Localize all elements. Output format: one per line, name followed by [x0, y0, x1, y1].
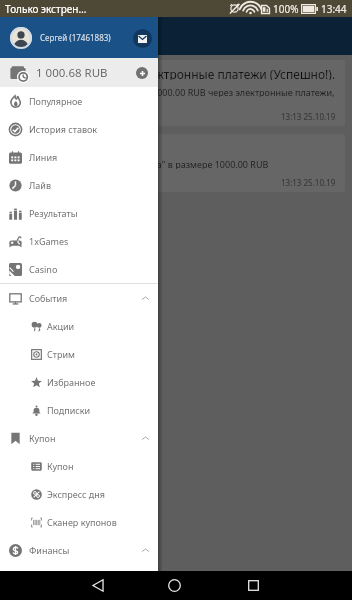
button[interactable]: 1 000.68 RUB [0, 58, 158, 87]
staticText: История: Пополнение счета через электрон… [7, 66, 336, 80]
staticText: Финансы [29, 544, 70, 556]
button[interactable]: Линия [0, 143, 158, 171]
staticText: Пополнение счета в размере 1000.00 RUB ч… [22, 86, 335, 97]
button[interactable]: Сканер купонов [0, 508, 158, 536]
button[interactable]: Экспресс дня [0, 480, 158, 508]
button[interactable]: Финансы [0, 536, 158, 564]
staticText: 1xGames [29, 235, 69, 247]
button[interactable]: Купон [0, 424, 158, 452]
staticText: События [29, 292, 68, 304]
button[interactable]: Back [83, 571, 112, 600]
staticText: Только экстрен… [5, 2, 87, 16]
button[interactable]: Начисление бонуса "Счастливая пятница" в… [7, 134, 345, 192]
button[interactable]: Casino [0, 255, 158, 283]
staticText: Избранное [47, 376, 96, 388]
staticText: Стрим [47, 348, 75, 360]
button[interactable]: История: Пополнение счета через электрон… [7, 60, 345, 126]
staticText: Сканер купонов [47, 516, 117, 528]
button[interactable]: Recents [239, 571, 268, 600]
button[interactable]: Избранное [0, 368, 158, 396]
button[interactable]: Подписки [0, 396, 158, 424]
button[interactable]: История ставок [0, 115, 158, 143]
staticText: Сергей (17461883) [40, 32, 111, 43]
staticText: 13:13 25.10.19 [281, 177, 336, 188]
button[interactable] [0, 0, 352, 600]
staticText: Акции [47, 320, 75, 332]
staticText: 13:44 [321, 2, 347, 16]
staticText: Линия [29, 151, 58, 163]
staticText: Экспресс дня [47, 488, 106, 500]
button[interactable]: Акции [0, 312, 158, 340]
staticText: Популярное [29, 95, 83, 107]
staticText: Результаты [29, 207, 78, 219]
button[interactable]: Сергей (17461883) [0, 17, 158, 58]
button[interactable]: Результаты [0, 199, 158, 227]
staticText: Лайв [29, 179, 51, 191]
staticText: 100% [273, 2, 299, 16]
staticText: Купон [47, 460, 74, 472]
button[interactable]: Messages [133, 29, 152, 48]
button[interactable]: События [0, 284, 158, 312]
button[interactable]: Home [160, 571, 189, 600]
staticText: Подписки [47, 404, 91, 416]
button[interactable]: Стрим [0, 340, 158, 368]
staticText: История ставок [29, 123, 98, 135]
button[interactable]: Deposit [136, 67, 148, 79]
staticText: 13:13 25.10.19 [281, 111, 336, 122]
button[interactable]: Купон [0, 452, 158, 480]
button[interactable]: Лайв [0, 171, 158, 199]
staticText: 1 000.68 RUB [36, 65, 108, 81]
button[interactable]: Популярное [0, 87, 158, 115]
staticText: Начисление бонуса "Счастливая пятница" в… [7, 158, 269, 169]
staticText: Casino [29, 263, 58, 275]
button[interactable]: 1xGames [0, 227, 158, 255]
staticText: Купон [29, 432, 56, 444]
